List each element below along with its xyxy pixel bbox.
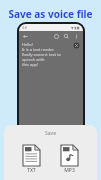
button[interactable]: History: [53, 33, 60, 40]
button[interactable]: Back: [22, 33, 29, 40]
button[interactable]: Clear text: [73, 42, 80, 49]
button[interactable]: Search: [63, 33, 70, 40]
staticText: Easily convert text to speech with: [22, 52, 73, 62]
staticText: MP3: [64, 167, 75, 174]
staticText: this app!: [22, 62, 39, 67]
staticText: Hello!: [22, 42, 33, 47]
staticText: It is a text reader.: [22, 47, 55, 52]
staticText: Save as voice file: [0, 7, 101, 21]
staticText: TXT: [27, 167, 36, 174]
button[interactable]: MP3: [59, 143, 80, 176]
staticText: Save: [45, 130, 56, 137]
staticText: 4:0: [22, 25, 27, 30]
button[interactable]: More options: [73, 33, 80, 40]
button[interactable]: TXT: [21, 143, 42, 176]
